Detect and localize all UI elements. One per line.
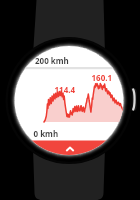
button[interactable]: Speed chart watch screen: [0, 0, 140, 200]
